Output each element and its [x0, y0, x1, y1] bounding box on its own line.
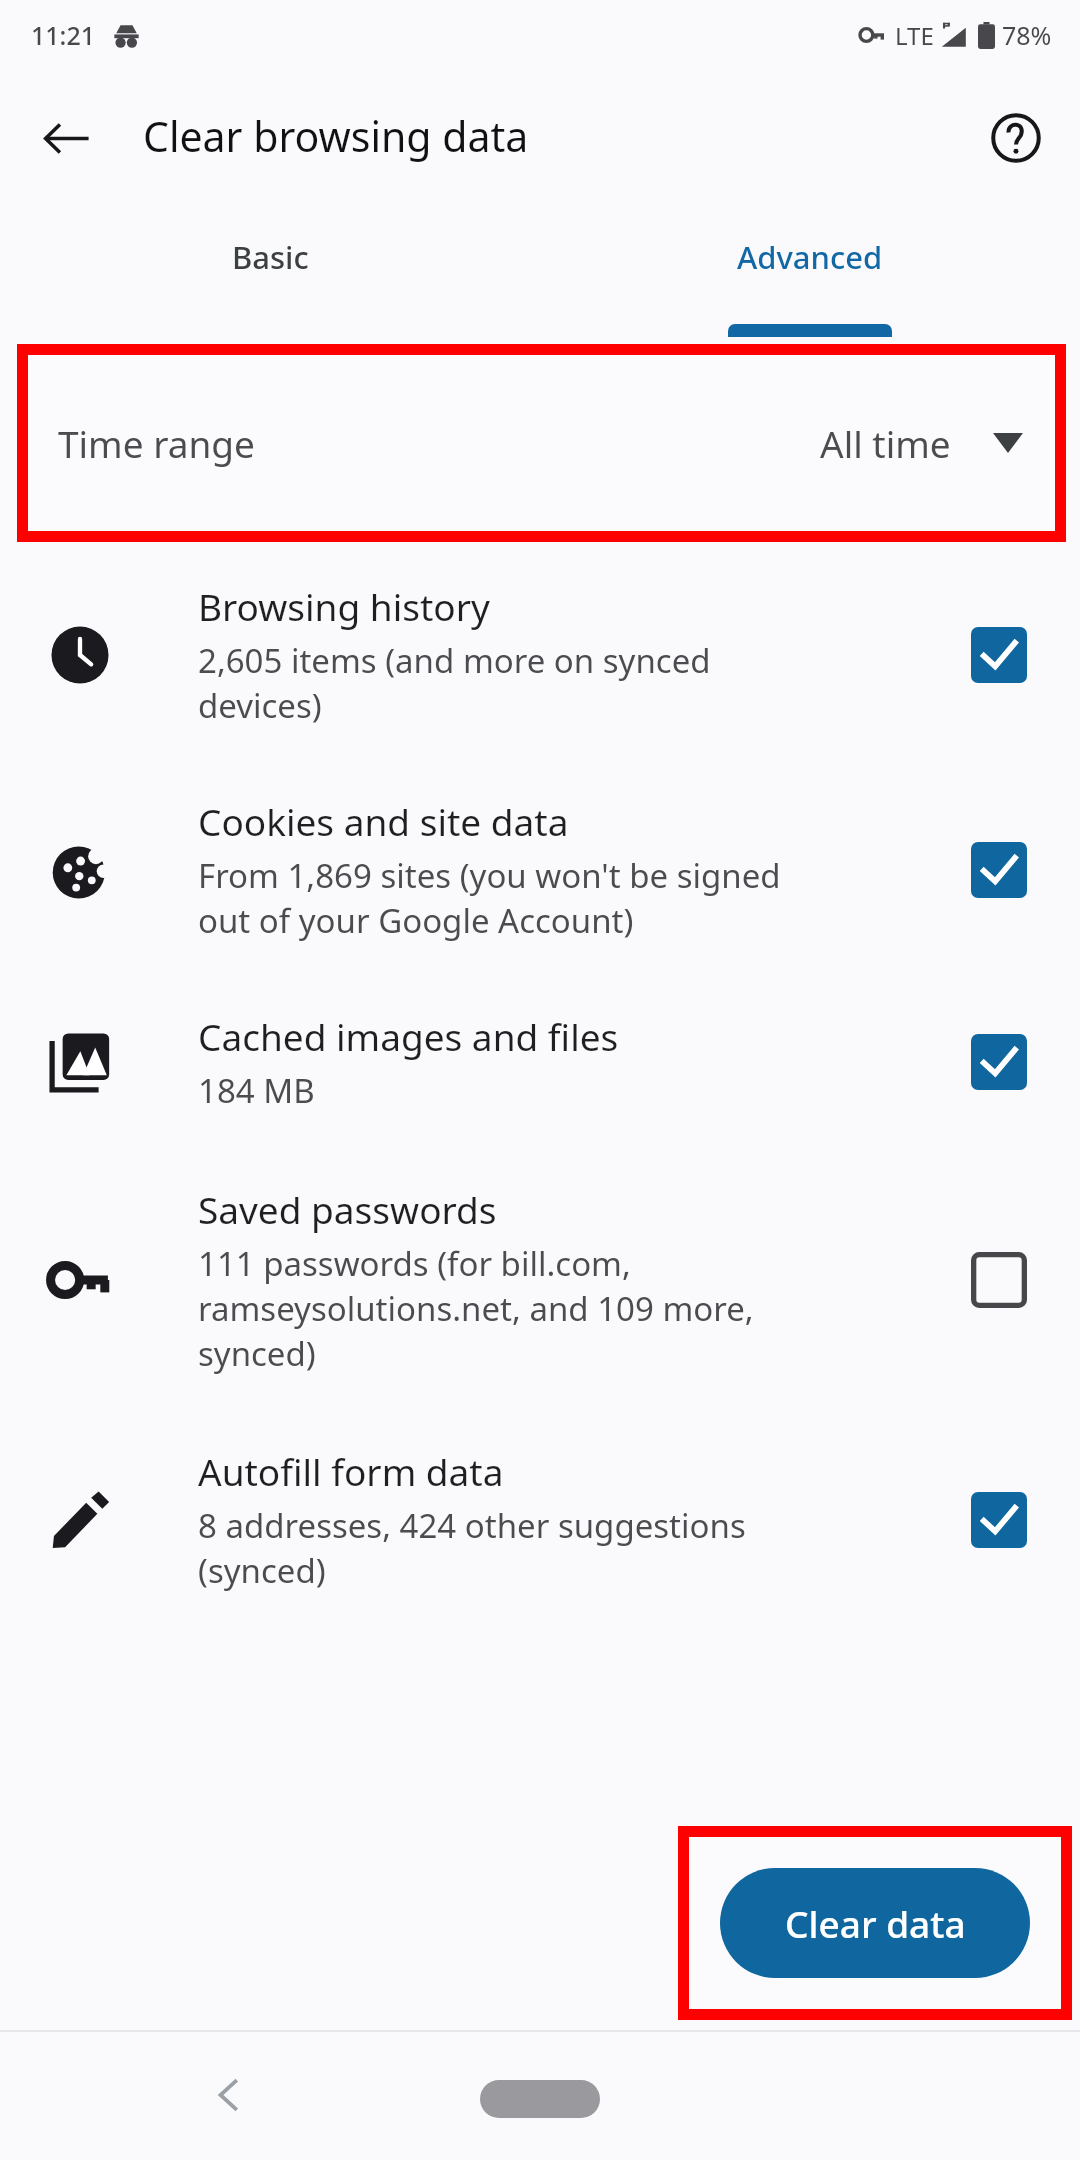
- staticText: All time: [820, 418, 951, 468]
- button[interactable]: Advanced: [540, 205, 1080, 337]
- button[interactable]: Autofill form data: [0, 1412, 1080, 1627]
- button[interactable]: Browsing history: [0, 547, 1080, 762]
- staticText: Cookies and site data: [198, 796, 569, 846]
- staticText: Time range: [58, 418, 255, 468]
- button[interactable]: Saved passwords checkbox: [956, 1237, 1042, 1323]
- staticText: Cached images and files: [198, 1011, 619, 1061]
- staticText: Basic: [232, 236, 309, 278]
- staticText: 78%: [1002, 18, 1052, 52]
- staticText: 11:21: [31, 18, 96, 52]
- button[interactable]: Saved passwords: [0, 1147, 1080, 1412]
- staticText: synced): [198, 1331, 316, 1376]
- button[interactable]: Back: [26, 98, 106, 178]
- staticText: Saved passwords: [198, 1184, 497, 1234]
- button[interactable]: Time range: [28, 355, 1055, 531]
- staticText: ramseysolutions.net, and 109 more,: [198, 1286, 754, 1331]
- button[interactable]: Autofill form data checkbox: [956, 1477, 1042, 1563]
- staticText: (synced): [198, 1548, 326, 1593]
- staticText: Advanced: [737, 236, 883, 278]
- button[interactable]: Cached images and files checkbox: [956, 1019, 1042, 1105]
- staticText: devices): [198, 683, 322, 728]
- staticText: out of your Google Account): [198, 898, 634, 943]
- button[interactable]: Back: [190, 2055, 270, 2135]
- staticText: 2,605 items (and more on synced: [198, 638, 711, 683]
- staticText: 111 passwords (for bill.com,: [198, 1241, 631, 1286]
- staticText: 8 addresses, 424 other suggestions: [198, 1503, 746, 1548]
- button[interactable]: Home: [480, 2080, 600, 2118]
- button[interactable]: Clear data: [720, 1868, 1030, 1978]
- button[interactable]: Cached images and files: [0, 977, 1080, 1147]
- staticText: Clear browsing data: [143, 108, 529, 164]
- button[interactable]: Help: [976, 98, 1056, 178]
- button[interactable]: Cookies and site data: [0, 762, 1080, 977]
- staticText: Clear data: [785, 1898, 966, 1948]
- button[interactable]: Browsing history checkbox: [956, 612, 1042, 698]
- button[interactable]: Cookies and site data checkbox: [956, 827, 1042, 913]
- staticText: Autofill form data: [198, 1446, 504, 1496]
- staticText: From 1,869 sites (you won't be signed: [198, 853, 781, 898]
- staticText: LTE: [895, 19, 934, 52]
- staticText: 184 MB: [198, 1068, 315, 1113]
- button[interactable]: Basic: [0, 205, 540, 337]
- staticText: Browsing history: [198, 581, 490, 631]
